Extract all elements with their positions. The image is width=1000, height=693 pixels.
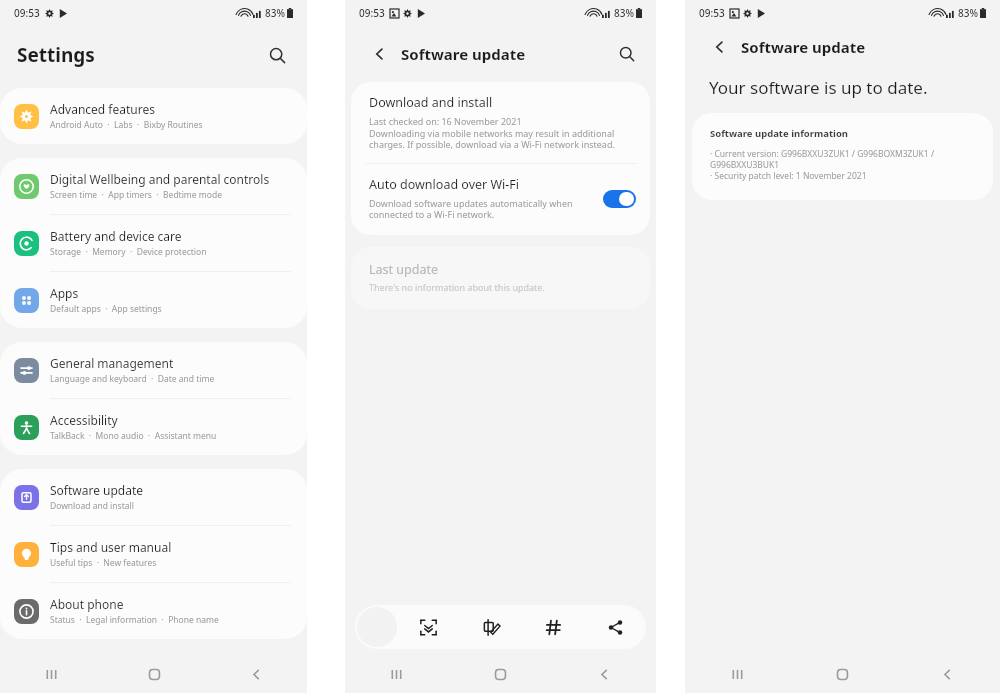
- staticText: 09:53: [699, 6, 725, 20]
- button[interactable]: Software update information: [692, 113, 993, 200]
- button[interactable]: Home: [103, 655, 205, 693]
- button[interactable]: Last update: [351, 247, 650, 309]
- button[interactable]: Crop and draw: [460, 605, 522, 649]
- staticText: Software update information: [710, 127, 849, 140]
- staticText: Screen time · App timers · Bedtime mode: [50, 189, 222, 201]
- button[interactable]: Back: [895, 655, 1000, 693]
- button[interactable]: Back: [552, 655, 656, 693]
- staticText: Download software updates automatically …: [369, 197, 593, 221]
- staticText: General management: [50, 355, 174, 371]
- staticText: Download and install: [50, 500, 134, 512]
- staticText: Status · Legal information · Phone name: [50, 614, 219, 626]
- button[interactable]: Back: [205, 655, 307, 693]
- staticText: 83%: [614, 6, 634, 20]
- staticText: · Current version: G996BXXU3ZUK1 / G996B…: [710, 148, 979, 170]
- button[interactable]: Battery and device care: [0, 215, 307, 271]
- staticText: About phone: [50, 596, 124, 612]
- button[interactable]: Tips and user manual: [0, 526, 307, 582]
- button[interactable]: Tags: [522, 605, 584, 649]
- button[interactable]: Screenshot preview: [357, 607, 397, 647]
- staticText: Tips and user manual: [50, 539, 172, 555]
- button[interactable]: Accessibility: [0, 399, 307, 455]
- button[interactable]: General management: [0, 342, 307, 398]
- button[interactable]: Download and install: [351, 82, 650, 163]
- staticText: Your software is up to date.: [709, 76, 928, 99]
- staticText: 83%: [265, 6, 285, 20]
- staticText: Last update: [369, 261, 438, 278]
- button[interactable]: Advanced features: [0, 88, 307, 144]
- button[interactable]: Share: [584, 605, 646, 649]
- staticText: Downloading via mobile networks may resu…: [369, 127, 636, 151]
- staticText: Android Auto · Labs · Bixby Routines: [50, 119, 203, 131]
- staticText: Digital Wellbeing and parental controls: [50, 171, 270, 187]
- staticText: TalkBack · Mono audio · Assistant menu: [50, 430, 217, 442]
- staticText: · Security patch level: 1 November 2021: [710, 170, 867, 182]
- staticText: Default apps · App settings: [50, 303, 162, 315]
- staticText: Apps: [50, 285, 79, 301]
- button[interactable]: Scroll capture: [397, 605, 460, 649]
- button[interactable]: Home: [790, 655, 895, 693]
- button[interactable]: Digital Wellbeing and parental controls: [0, 158, 307, 214]
- button[interactable]: Back: [367, 41, 393, 67]
- staticText: Software update: [401, 44, 526, 64]
- staticText: 09:53: [14, 6, 40, 20]
- button[interactable]: Auto download over Wi-Fi toggle: [603, 190, 636, 208]
- button[interactable]: Back: [707, 34, 733, 60]
- button[interactable]: Search: [612, 39, 642, 69]
- button[interactable]: Recents: [345, 655, 448, 693]
- button[interactable]: Recents: [0, 655, 103, 693]
- staticText: Software update: [50, 482, 144, 498]
- button[interactable]: Software update: [0, 469, 307, 525]
- staticText: Download and install: [369, 94, 493, 111]
- staticText: Advanced features: [50, 101, 155, 117]
- button[interactable]: Search: [261, 39, 293, 71]
- staticText: There's no information about this update…: [369, 281, 545, 293]
- staticText: Battery and device care: [50, 228, 182, 244]
- staticText: 83%: [958, 6, 978, 20]
- staticText: Settings: [17, 42, 95, 68]
- button[interactable]: Recents: [685, 655, 790, 693]
- button[interactable]: Auto download over Wi-Fi: [351, 164, 650, 235]
- staticText: 09:53: [359, 6, 385, 20]
- staticText: Accessibility: [50, 412, 118, 428]
- button[interactable]: About phone: [0, 583, 307, 639]
- button[interactable]: Apps: [0, 272, 307, 328]
- staticText: Last checked on: 16 November 2021: [369, 115, 522, 127]
- button[interactable]: Home: [448, 655, 552, 693]
- staticText: Storage · Memory · Device protection: [50, 246, 207, 258]
- staticText: Software update: [741, 37, 866, 57]
- staticText: Auto download over Wi-Fi: [369, 176, 520, 193]
- staticText: Useful tips · New features: [50, 557, 157, 569]
- staticText: Language and keyboard · Date and time: [50, 373, 215, 385]
